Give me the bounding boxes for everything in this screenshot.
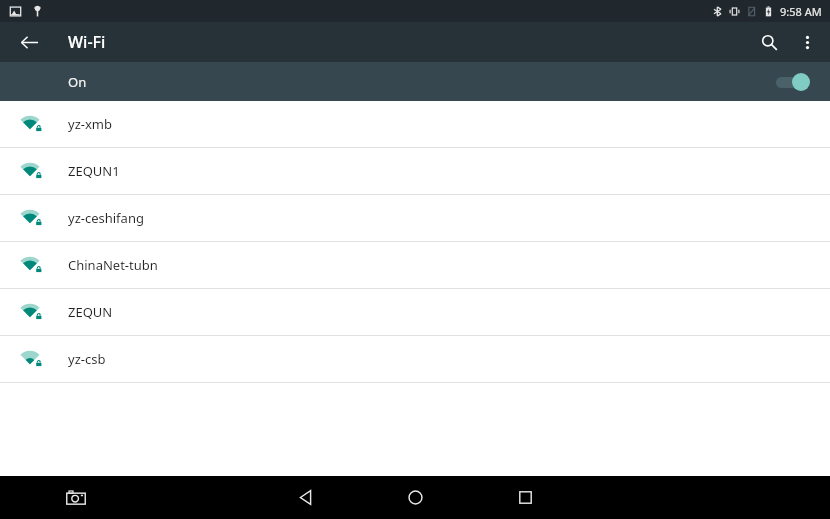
button[interactable]: yz-ceshifang <box>0 195 830 241</box>
staticText: 9:58 AM <box>780 4 822 19</box>
button[interactable]: On <box>0 62 830 101</box>
button[interactable]: ZEQUN1 <box>0 148 830 194</box>
button[interactable]: Home <box>387 476 443 519</box>
button[interactable]: Screenshot <box>58 480 94 516</box>
button[interactable]: Search <box>750 23 788 61</box>
button[interactable]: Back <box>12 25 46 59</box>
button[interactable]: ChinaNet-tubn <box>0 242 830 288</box>
button[interactable]: yz-xmb <box>0 101 830 147</box>
staticText: yz-xmb <box>68 115 112 133</box>
staticText: yz-ceshifang <box>68 209 144 227</box>
button[interactable]: Recent apps <box>497 476 553 519</box>
button[interactable]: ZEQUN <box>0 289 830 335</box>
staticText: ZEQUN1 <box>68 162 120 180</box>
button[interactable]: More options <box>788 23 826 61</box>
button[interactable]: yz-csb <box>0 336 830 382</box>
staticText: ZEQUN <box>68 303 113 321</box>
staticText: yz-csb <box>68 350 106 368</box>
button[interactable]: Back <box>277 476 333 519</box>
staticText: On <box>68 73 87 91</box>
staticText: Wi-Fi <box>68 31 106 53</box>
staticText: ChinaNet-tubn <box>68 256 158 274</box>
